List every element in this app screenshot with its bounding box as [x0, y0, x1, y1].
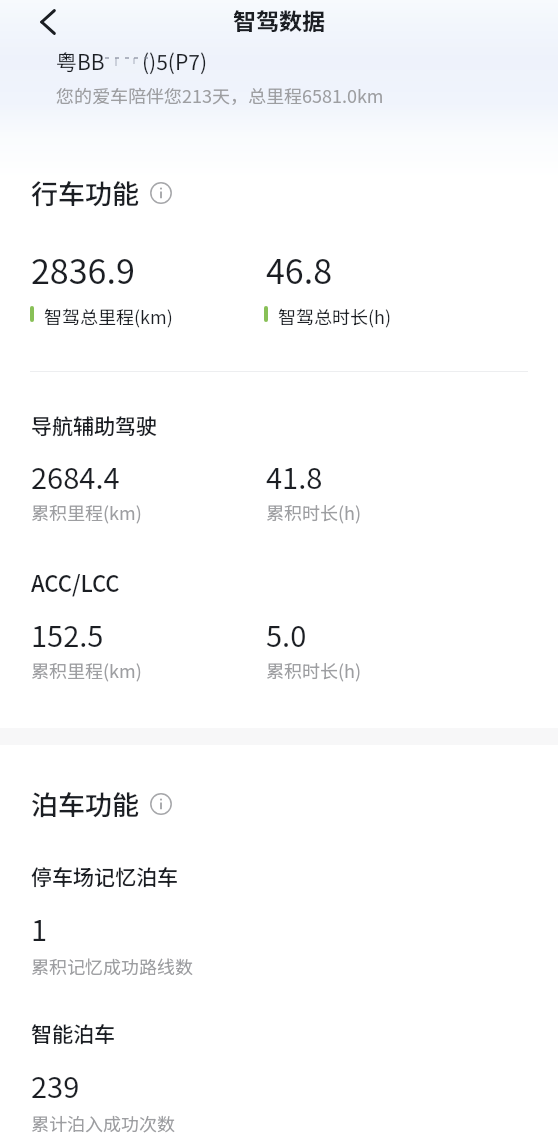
- staticText: 累计泊入成功次数: [31, 1110, 175, 1136]
- staticText: 智驾数据: [233, 3, 325, 36]
- staticText: 41.8: [266, 455, 323, 497]
- staticText: 2684.4: [31, 455, 120, 497]
- staticText: 您的爱车陪伴您213天，总里程6581.0km: [56, 82, 384, 108]
- staticText: 239: [31, 1064, 80, 1106]
- staticText: 智能泊车: [31, 1018, 115, 1048]
- staticText: 粤BB: [56, 46, 105, 76]
- staticText: 累积里程(km): [31, 657, 142, 683]
- staticText: ACC/LCC: [31, 566, 120, 598]
- staticText: 46.8: [266, 245, 333, 294]
- staticText: 泊车功能: [31, 784, 139, 823]
- staticText: 累积时长(h): [266, 499, 362, 525]
- staticText: 1: [31, 907, 48, 949]
- staticText: 导航辅助驾驶: [31, 410, 157, 440]
- staticText: 累积里程(km): [31, 499, 142, 525]
- button[interactable]: 泊车功能说明: [31, 784, 172, 823]
- staticText: 5.0: [266, 613, 307, 655]
- staticText: 累积记忆成功路线数: [31, 953, 193, 979]
- staticText: 累积时长(h): [266, 657, 362, 683]
- staticText: ()5(P7): [142, 46, 207, 76]
- staticText: 行车功能: [31, 173, 139, 212]
- staticText: 停车场记忆泊车: [31, 861, 178, 891]
- staticText: 152.5: [31, 613, 104, 655]
- staticText: 智驾总时长(h): [278, 303, 392, 329]
- button[interactable]: 行车功能说明: [31, 173, 172, 212]
- button[interactable]: Back: [26, 0, 70, 44]
- staticText: 智驾总里程(km): [44, 303, 173, 329]
- staticText: 2836.9: [31, 245, 135, 294]
